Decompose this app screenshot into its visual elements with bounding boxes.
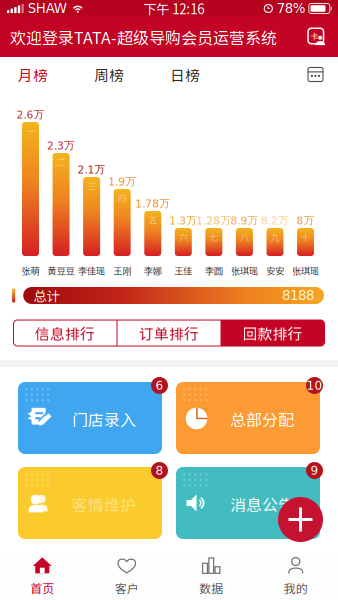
staticText: 日榜 [170,64,200,85]
button[interactable]: 数据 [169,554,253,598]
staticText: 客情维护 [72,492,136,516]
staticText: 数据 [199,579,223,597]
staticText: 8.9万 [230,214,258,227]
staticText: 我的 [284,579,308,597]
staticText: 消息公告 [230,492,294,516]
staticText: 欢迎登录TATA-超级导购会员运营系统 [10,25,277,49]
staticText: 8万 [296,214,314,227]
button[interactable]: 消息公告 [176,467,320,539]
staticText: 1.3万 [169,214,197,227]
staticText: 下午 12:16 [143,0,204,18]
staticText: 8 [155,463,163,477]
staticText: 总部分配 [230,407,294,431]
staticText: SHAW [28,1,67,16]
staticText: 月榜 [18,64,48,85]
staticText: 卡 [310,30,318,42]
staticText: 八 [240,230,249,243]
staticText: 五 [148,213,157,226]
button[interactable]: 我的 [253,554,338,598]
staticText: 一 [26,124,35,137]
button[interactable]: 订单排行 [117,320,220,346]
staticText: 二 [57,155,66,168]
button[interactable]: 信息排行 [13,320,116,346]
staticText: 王刚 [113,264,131,277]
staticText: 回款排行 [242,322,302,344]
staticText: 6 [155,378,163,392]
staticText: 1.28万 [196,214,231,227]
staticText: 2.3万 [47,139,75,152]
staticText: 七 [209,230,218,243]
staticText: 8188 [282,288,314,303]
staticText: 首页 [30,579,54,597]
staticText: 1.9万 [108,175,136,188]
button[interactable]: 首页 [0,554,84,598]
button[interactable]: 选择日期 [308,67,323,81]
staticText: 安安 [266,264,284,277]
button[interactable]: 回款排行 [220,320,324,346]
button[interactable]: 客情维护 [18,467,162,539]
staticText: 周榜 [94,64,124,85]
staticText: 三 [87,179,96,192]
staticText: 张萌 [21,264,39,277]
staticText: 1.78万 [135,197,170,210]
staticText: 李娜 [144,264,162,277]
staticText: 李佳瑶 [78,264,105,277]
staticText: 黄豆豆 [48,264,75,277]
staticText: 9 [310,463,318,477]
button[interactable]: 月榜 [18,64,48,85]
button[interactable]: 门店录入 [18,382,162,454]
staticText: 十 [301,230,310,243]
staticText: 订单排行 [139,322,199,344]
staticText: 王佳 [174,264,192,277]
staticText: 2.1万 [78,163,106,176]
staticText: 信息排行 [35,322,95,344]
button[interactable]: 日榜 [170,64,200,85]
button[interactable]: 周榜 [94,64,124,85]
button[interactable]: 会员卡 [307,27,327,46]
staticText: 8.2万 [261,214,289,227]
staticText: 九 [270,230,279,243]
staticText: 2.6万 [16,108,44,121]
staticText: 78% [277,1,306,16]
staticText: 四 [118,191,127,204]
staticText: 李圆 [205,264,223,277]
button[interactable]: 客户 [84,554,169,598]
button[interactable]: 新建 [278,497,323,542]
staticText: 张琪瑶 [231,264,258,277]
staticText: 门店录入 [72,407,136,431]
staticText: 张琪瑶 [292,264,319,277]
button[interactable]: 总部分配 [176,382,320,454]
staticText: 六 [179,230,188,243]
staticText: 10 [306,378,322,392]
staticText: 客户 [115,579,139,597]
staticText: 总计 [33,286,59,305]
